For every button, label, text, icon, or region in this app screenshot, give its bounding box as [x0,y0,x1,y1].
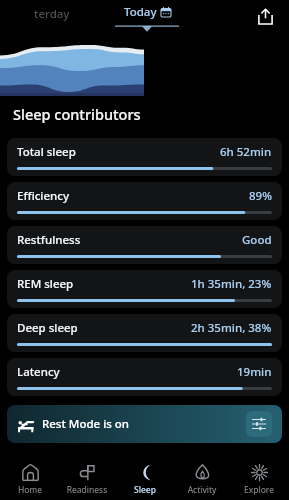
staticText: REM sleep [17,276,74,292]
button[interactable]: Home [3,462,57,498]
button[interactable]: Readiness [60,462,114,498]
button[interactable]: Efficiency [7,182,282,220]
staticText: Today [124,4,157,20]
button[interactable]: Sleep [118,462,172,498]
button[interactable]: Deep sleep [7,314,282,352]
staticText: Total sleep [17,144,76,160]
staticText: 1h 35min, 23% [191,276,272,292]
staticText: terday [34,6,70,22]
button[interactable]: Total sleep [7,138,282,176]
button[interactable]: terday [30,4,74,24]
button[interactable]: Today [115,0,179,31]
staticText: Rest Mode is on [42,416,130,432]
staticText: Efficiency [17,188,69,204]
staticText: 6h 52min [220,144,272,160]
staticText: 19min [237,364,272,380]
staticText: Restfulness [17,232,81,248]
staticText: Sleep [118,484,172,496]
button[interactable]: Latency [7,358,282,396]
staticText: Deep sleep [17,320,78,336]
staticText: Sleep contributors [13,104,141,124]
staticText: Good [242,232,272,248]
staticText: Activity [175,484,229,496]
button[interactable]: REM sleep [7,270,282,308]
button[interactable]: Activity [175,462,229,498]
button[interactable]: Restfulness [7,226,282,264]
staticText: 89% [249,188,272,204]
button[interactable]: Share [253,4,277,28]
staticText: 2h 35min, 38% [191,320,272,336]
staticText: Home [3,484,57,496]
button[interactable]: Rest mode settings [246,411,272,437]
staticText: Readiness [60,484,114,496]
staticText: Explore [232,484,286,496]
staticText: Latency [17,364,60,380]
button[interactable]: Rest Mode is on [7,405,282,443]
button[interactable]: Explore [232,462,286,498]
